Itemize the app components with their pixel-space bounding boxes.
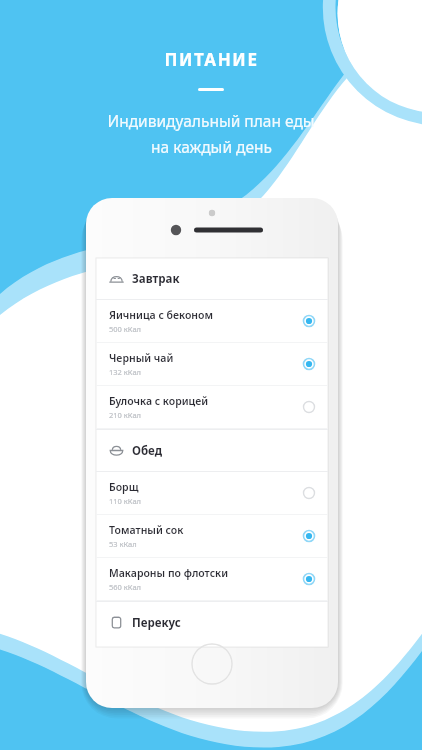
staticText: Борщ: [109, 480, 139, 494]
staticText: 210 кКал: [109, 410, 141, 420]
other: Not selected: [303, 401, 315, 413]
other: Selected: [303, 315, 315, 327]
staticText: Перекус: [132, 615, 181, 631]
staticText: Черный чай: [109, 351, 174, 365]
other: Selected: [303, 530, 315, 542]
button[interactable]: Томатный сок: [96, 515, 328, 557]
staticText: Булочка с корицей: [109, 394, 209, 408]
staticText: ПИТАНИЕ: [164, 48, 259, 71]
staticText: 560 кКал: [109, 582, 141, 592]
staticText: 132 кКал: [109, 367, 141, 377]
button[interactable]: Завтрак: [96, 258, 328, 299]
button[interactable]: Борщ: [96, 472, 328, 514]
staticText: Яичница с беконом: [109, 308, 213, 322]
other: Selected: [303, 573, 315, 585]
button[interactable]: Макароны по флотски: [96, 558, 328, 600]
button[interactable]: Черный чай: [96, 343, 328, 385]
other: Not selected: [303, 487, 315, 499]
button[interactable]: Яичница с беконом: [96, 300, 328, 342]
staticText: Индивидуальный план еды: [107, 110, 315, 131]
staticText: 110 кКал: [109, 496, 141, 506]
button[interactable]: Булочка с корицей: [96, 386, 328, 428]
staticText: Макароны по флотски: [109, 566, 229, 580]
staticText: 53 кКал: [109, 539, 137, 549]
staticText: 500 кКал: [109, 324, 141, 334]
staticText: Томатный сок: [109, 523, 184, 537]
staticText: Обед: [132, 443, 163, 459]
button[interactable]: Перекус: [96, 602, 328, 643]
button[interactable]: Обед: [96, 430, 328, 471]
staticText: Завтрак: [132, 271, 180, 287]
other: Selected: [303, 358, 315, 370]
staticText: на каждый день: [151, 136, 272, 157]
